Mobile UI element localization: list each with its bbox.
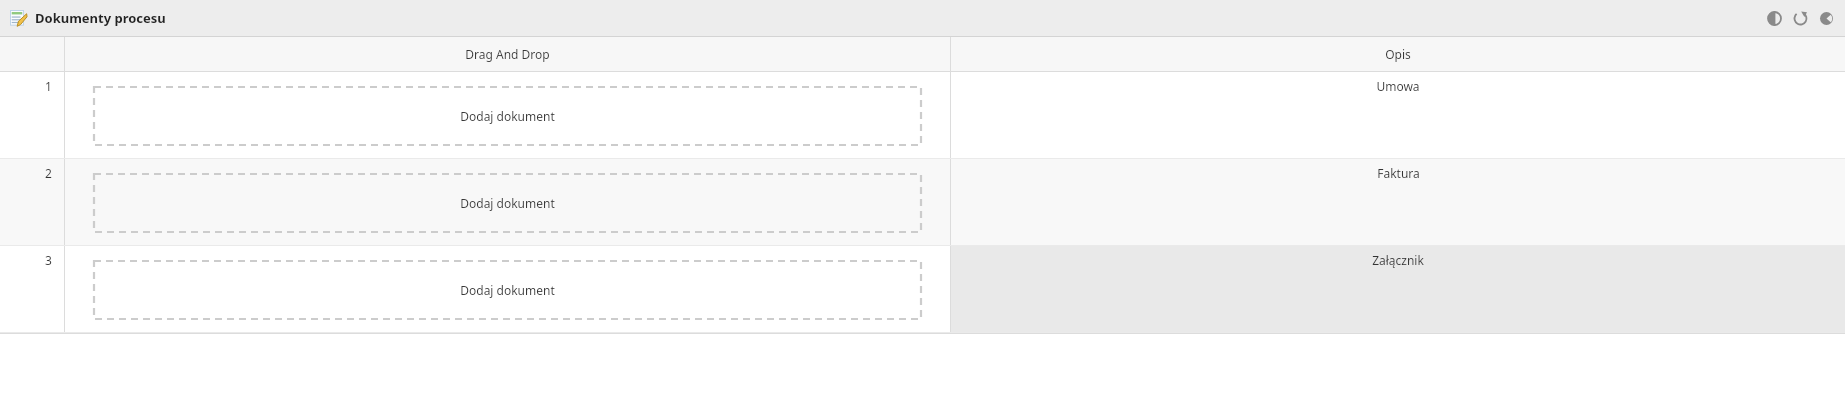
staticText: 2 <box>45 165 52 181</box>
staticText: Dodaj dokument <box>460 282 555 298</box>
button[interactable]: Faktura <box>951 159 1845 246</box>
button[interactable]: Dodaj dokument <box>94 174 921 232</box>
button[interactable]: Dodaj dokument <box>94 87 921 145</box>
button[interactable]: More options <box>1815 7 1837 29</box>
staticText: Dokumenty procesu <box>35 9 166 27</box>
button[interactable]: Refresh <box>1789 7 1811 29</box>
staticText: Umowa <box>1376 78 1420 94</box>
staticText: Dodaj dokument <box>460 195 555 211</box>
staticText: Opis <box>1385 46 1411 62</box>
staticText: Dodaj dokument <box>460 108 555 124</box>
button[interactable]: Umowa <box>951 72 1845 159</box>
button[interactable]: Załącznik <box>951 246 1845 333</box>
staticText: Drag And Drop <box>465 46 550 62</box>
staticText: 3 <box>45 252 52 268</box>
button[interactable]: Dodaj dokument <box>94 261 921 319</box>
button[interactable]: Toggle contrast <box>1763 7 1785 29</box>
staticText: Faktura <box>1377 165 1420 181</box>
staticText: 1 <box>45 78 52 94</box>
staticText: Załącznik <box>1372 252 1424 268</box>
